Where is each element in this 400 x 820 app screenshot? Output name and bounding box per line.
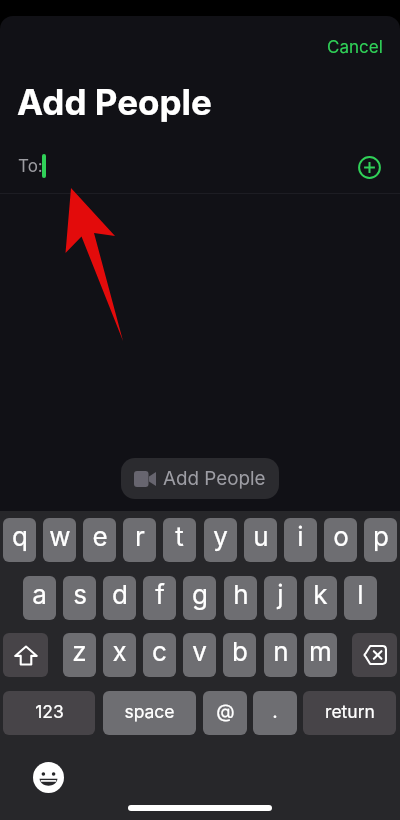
staticText: i bbox=[297, 521, 304, 552]
staticText: @ bbox=[216, 700, 235, 723]
staticText: return bbox=[325, 701, 375, 722]
button[interactable]: Add People bbox=[121, 458, 279, 499]
button[interactable]: a bbox=[23, 576, 56, 620]
staticText: a bbox=[32, 579, 47, 610]
staticText: Add People bbox=[17, 81, 212, 123]
button[interactable]: f bbox=[143, 576, 176, 620]
button[interactable]: s bbox=[63, 576, 96, 620]
button[interactable]: Backspace bbox=[352, 633, 397, 677]
staticText: d bbox=[112, 579, 128, 610]
button[interactable]: o bbox=[324, 518, 357, 562]
staticText: o bbox=[333, 521, 349, 552]
button[interactable]: space bbox=[103, 691, 196, 735]
button[interactable]: m bbox=[304, 633, 337, 677]
button[interactable]: x bbox=[103, 633, 136, 677]
staticText: z bbox=[72, 636, 87, 667]
button[interactable]: v bbox=[183, 633, 216, 677]
button[interactable]: z bbox=[63, 633, 96, 677]
button[interactable]: t bbox=[163, 518, 196, 562]
button[interactable]: g bbox=[183, 576, 216, 620]
staticText: g bbox=[192, 579, 208, 610]
staticText: q bbox=[12, 521, 28, 552]
staticText: c bbox=[152, 636, 167, 667]
staticText: s bbox=[73, 579, 87, 610]
button[interactable]: i bbox=[284, 518, 317, 562]
button[interactable]: e bbox=[83, 518, 116, 562]
button[interactable]: Add contact bbox=[353, 151, 385, 183]
button[interactable]: . bbox=[253, 691, 297, 735]
staticText: m bbox=[309, 636, 332, 667]
staticText: y bbox=[213, 521, 228, 552]
button[interactable]: y bbox=[204, 518, 237, 562]
button[interactable]: Emoji keyboard bbox=[29, 758, 68, 797]
staticText: k bbox=[313, 579, 328, 610]
button[interactable]: p bbox=[364, 518, 397, 562]
staticText: t bbox=[175, 521, 184, 552]
staticText: x bbox=[112, 636, 127, 667]
staticText: To: bbox=[18, 156, 43, 177]
staticText: u bbox=[253, 521, 269, 552]
staticText: w bbox=[49, 521, 71, 552]
staticText: space bbox=[124, 701, 175, 722]
button[interactable]: d bbox=[103, 576, 136, 620]
staticText: e bbox=[92, 521, 108, 552]
button[interactable]: j bbox=[264, 576, 297, 620]
staticText: j bbox=[277, 579, 284, 610]
button[interactable]: Shift bbox=[3, 633, 48, 677]
button[interactable]: return bbox=[303, 691, 396, 735]
button[interactable]: @ bbox=[203, 691, 247, 735]
button[interactable]: Cancel bbox=[316, 29, 394, 65]
staticText: p bbox=[373, 521, 389, 552]
button[interactable]: k bbox=[304, 576, 337, 620]
button[interactable]: q bbox=[3, 518, 36, 562]
staticText: l bbox=[357, 579, 364, 610]
button[interactable]: w bbox=[43, 518, 76, 562]
button[interactable]: u bbox=[244, 518, 277, 562]
button[interactable]: b bbox=[223, 633, 256, 677]
staticText: v bbox=[192, 636, 207, 667]
staticText: Cancel bbox=[327, 37, 383, 58]
button[interactable]: h bbox=[224, 576, 257, 620]
staticText: 123 bbox=[35, 701, 64, 722]
staticText: n bbox=[273, 636, 289, 667]
staticText: f bbox=[155, 579, 165, 610]
staticText: . bbox=[272, 700, 278, 723]
button[interactable]: r bbox=[123, 518, 156, 562]
button[interactable]: l bbox=[344, 576, 377, 620]
staticText: r bbox=[135, 521, 145, 552]
button[interactable]: 123 bbox=[3, 691, 95, 735]
button[interactable]: c bbox=[143, 633, 176, 677]
staticText: b bbox=[232, 636, 248, 667]
staticText: Add People bbox=[163, 467, 266, 490]
staticText: h bbox=[233, 579, 249, 610]
button[interactable]: n bbox=[264, 633, 297, 677]
